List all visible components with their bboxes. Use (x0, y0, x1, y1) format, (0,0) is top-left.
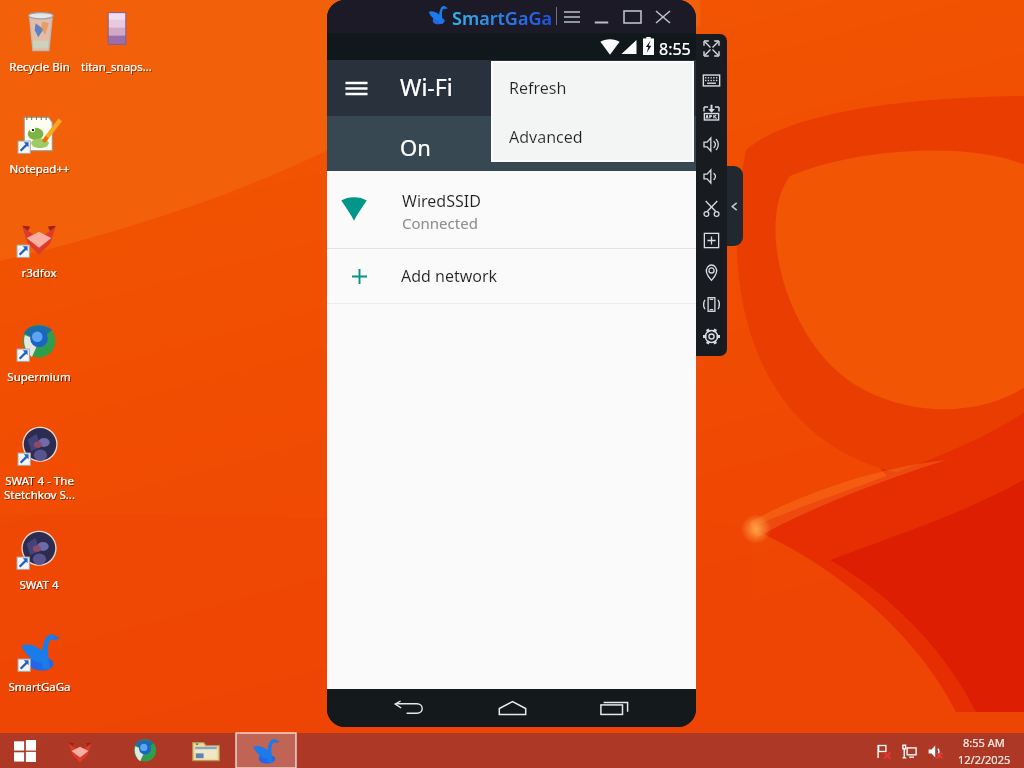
staticText: SmartGaGa (452, 6, 553, 31)
button[interactable]: Volume muted (922, 738, 948, 764)
button[interactable]: SmartGaGa window (236, 733, 296, 768)
button[interactable]: Add network (327, 249, 696, 303)
button[interactable]: Home (489, 695, 535, 721)
button[interactable]: Add (699, 228, 724, 253)
button[interactable]: Notifications (870, 738, 896, 764)
button[interactable]: SWAT 4 - The Stetchkov S... (1, 424, 77, 502)
staticText: Recycle Bin (9, 59, 70, 75)
staticText: SmartGaGa (8, 679, 71, 695)
button[interactable]: Refresh (492, 62, 693, 114)
staticText: Add network (401, 265, 498, 287)
staticText: Recycle Bin (10, 60, 71, 76)
button[interactable]: Menu (558, 2, 586, 31)
button[interactable]: titan_snaps... (78, 10, 154, 75)
button[interactable]: Install APK (699, 100, 724, 125)
staticText: On (400, 132, 431, 162)
button[interactable]: Volume down (699, 164, 724, 189)
button[interactable]: SWAT 4 (1, 528, 77, 593)
button[interactable]: Screenshot (699, 196, 724, 221)
button[interactable]: File Explorer (176, 733, 236, 768)
staticText: SWAT 4 - The Stetchkov S... (5, 474, 76, 503)
button[interactable]: Recycle Bin (1, 10, 77, 75)
button[interactable]: Back (386, 695, 432, 721)
staticText: SWAT 4 (19, 577, 59, 593)
button[interactable]: Keyboard (699, 68, 724, 93)
staticText: Supermium (7, 369, 71, 385)
button[interactable]: WiredSSID (327, 171, 696, 248)
staticText: r3dfox (22, 266, 58, 282)
staticText: 8:55 AM (963, 735, 1005, 750)
button[interactable]: Minimize (587, 2, 615, 31)
button[interactable]: Notepad++ (1, 112, 77, 177)
button[interactable]: Volume up (699, 132, 724, 157)
staticText: SWAT 4 - The Stetchkov S... (4, 473, 75, 502)
button[interactable]: Network (896, 738, 922, 764)
button[interactable]: Fullscreen (699, 36, 724, 61)
button[interactable]: Recents (592, 695, 638, 721)
button[interactable]: SmartGaGa (1, 630, 77, 695)
button[interactable]: Advanced (492, 114, 693, 161)
staticText: Refresh (509, 77, 567, 99)
button[interactable]: Navigation drawer (343, 75, 369, 101)
staticText: Notepad++ (10, 162, 71, 178)
button[interactable]: Location (699, 260, 724, 285)
staticText: 8:55 (659, 38, 691, 60)
staticText: titan_snaps... (82, 60, 153, 76)
button[interactable]: Supermium (115, 733, 175, 768)
staticText: SWAT 4 (20, 578, 60, 594)
staticText: Advanced (509, 126, 583, 148)
staticText: WiredSSID (402, 190, 481, 212)
button[interactable]: On (327, 116, 696, 171)
staticText: r3dfox (21, 265, 57, 281)
staticText: Connected (402, 213, 478, 233)
staticText: SmartGaGa (9, 680, 72, 696)
staticText: 12/2/2025 (958, 752, 1011, 767)
button[interactable]: Supermium (1, 320, 77, 385)
staticText: Notepad++ (9, 161, 70, 177)
button[interactable]: 8:55 AM (956, 733, 1012, 768)
button[interactable]: Settings (699, 324, 724, 349)
staticText: titan_snaps... (81, 59, 152, 75)
button[interactable]: r3dfox (1, 216, 77, 281)
button[interactable]: Shake (699, 292, 724, 317)
staticText: Wi-Fi (400, 71, 453, 102)
button[interactable]: r3dfox (50, 733, 110, 768)
staticText: Supermium (8, 370, 72, 386)
button[interactable]: Start (0, 733, 50, 768)
button[interactable]: Close (649, 2, 677, 31)
button[interactable]: Collapse toolbar (725, 166, 743, 246)
button[interactable]: Maximize (618, 2, 646, 31)
